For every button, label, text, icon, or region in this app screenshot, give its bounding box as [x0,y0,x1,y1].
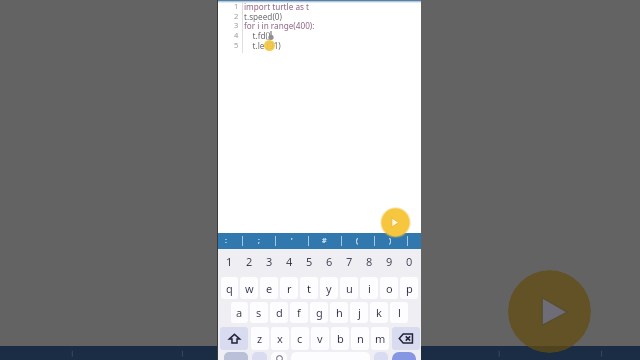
staticText: o [386,281,393,296]
button[interactable]: Period [374,352,388,360]
button[interactable]: ' [275,233,308,249]
staticText: t.speed(0) [244,11,282,22]
staticText: 5 [306,254,313,269]
staticText: m [375,331,386,346]
staticText: w [245,281,254,296]
staticText: j [358,305,361,320]
button[interactable]: Backspace [392,327,420,350]
button[interactable]: a [231,302,248,323]
button[interactable]: ) [374,233,407,249]
button[interactable]: j [350,302,368,323]
button[interactable]: 2 [239,249,259,276]
button[interactable]: 6 [319,249,339,276]
button[interactable]: 0 [399,249,419,276]
button[interactable]: q [221,277,238,299]
button[interactable]: r [280,277,298,299]
button[interactable]: # [308,233,341,249]
staticText: 1 [234,1,239,11]
button[interactable]: h [330,302,348,323]
button[interactable]: 5 [299,249,319,276]
button[interactable]: 1 [220,249,239,276]
staticText: s [256,305,262,320]
staticText: 4 [234,30,239,40]
button[interactable]: v [311,327,329,350]
staticText: y [326,281,332,296]
button[interactable]: s [250,302,268,323]
staticText: ) [389,236,392,246]
button[interactable]: 3 [259,249,279,276]
staticText: p [406,281,413,296]
button[interactable]: : [209,233,242,249]
staticText: x [277,331,283,346]
staticText: 1 [226,254,233,269]
button[interactable]: o [380,277,398,299]
button[interactable]: n [351,327,369,350]
staticText: f [297,305,301,320]
staticText: a [236,305,243,320]
button[interactable]: p [400,277,418,299]
button[interactable]: t [300,277,318,299]
staticText: 9 [386,254,393,269]
button[interactable]: f [290,302,308,323]
staticText: i [368,281,371,296]
button[interactable]: b [331,327,349,350]
button[interactable]: g [310,302,328,323]
staticText: e [266,281,273,296]
staticText: q [226,281,233,296]
staticText: : [225,236,227,246]
button[interactable]: ; [242,233,275,249]
staticText: 5 [234,40,239,50]
staticText: k [376,305,382,320]
button[interactable]: Shift [220,327,248,350]
button[interactable]: d [270,302,288,323]
button[interactable]: Comma [252,352,267,360]
button[interactable]: Emoji [271,352,287,360]
button[interactable]: x [271,327,289,350]
staticText: b [337,331,344,346]
staticText: v [317,331,323,346]
staticText: t.fd() [244,30,271,41]
staticText: ' [291,236,293,246]
button[interactable]: 9 [379,249,399,276]
button[interactable]: k [370,302,388,323]
button[interactable]: Run [380,207,411,238]
staticText: t [307,281,311,296]
staticText: 2 [234,11,239,21]
staticText: l [398,305,401,320]
button[interactable]: z [251,327,269,350]
staticText: 7 [346,254,353,269]
button[interactable]: u [340,277,358,299]
staticText: import turtle as t [244,1,310,12]
staticText: g [316,305,323,320]
staticText: u [346,281,353,296]
button[interactable]: 4 [279,249,299,276]
staticText: 6 [326,254,333,269]
staticText: 0 [406,254,413,269]
button[interactable]: Play [508,270,591,353]
button[interactable]: ?123 [224,352,248,360]
staticText: # [322,236,327,246]
button[interactable]: ( [341,233,374,249]
staticText: 4 [286,254,293,269]
staticText: for i in range(400): [244,20,315,31]
staticText: c [297,331,303,346]
button[interactable]: y [320,277,338,299]
staticText: n [357,331,364,346]
staticText: 8 [366,254,373,269]
staticText: ( [356,236,359,246]
button[interactable]: m [371,327,389,350]
staticText: 2 [246,254,253,269]
button[interactable]: l [390,302,408,323]
button[interactable]: i [360,277,378,299]
button[interactable]: 7 [339,249,359,276]
button[interactable]: c [291,327,309,350]
button[interactable]: Enter [392,352,416,360]
button[interactable]: w [240,277,258,299]
button[interactable]: e [260,277,278,299]
staticText: z [257,331,263,346]
button[interactable]: 8 [359,249,379,276]
staticText: h [336,305,343,320]
staticText: 3 [266,254,273,269]
